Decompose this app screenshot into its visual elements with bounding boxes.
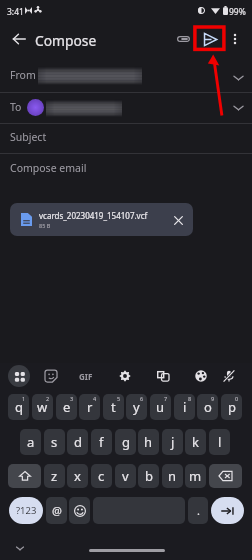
button[interactable]: m	[185, 464, 206, 488]
staticText: b	[145, 467, 153, 485]
button[interactable]: To	[0, 94, 252, 118]
staticText: 5	[117, 395, 121, 402]
button[interactable]: Expand	[232, 71, 245, 84]
button[interactable]: Apps	[8, 365, 30, 387]
button[interactable]: Settings	[114, 365, 136, 387]
button[interactable]: Expand	[232, 101, 245, 114]
staticText: k	[192, 433, 199, 451]
button[interactable]: e	[56, 394, 77, 420]
button[interactable]: .	[188, 497, 208, 524]
button[interactable]: Delete	[209, 464, 242, 488]
button[interactable]: t	[103, 394, 124, 420]
button[interactable]: Hide keyboard	[11, 539, 29, 557]
staticText: Subject	[10, 130, 47, 144]
staticText: 2	[46, 395, 50, 402]
button[interactable]: Remove attachment	[168, 210, 188, 230]
staticText: ?123	[16, 504, 37, 517]
staticText: 3:41	[7, 6, 24, 18]
staticText: q	[15, 398, 23, 416]
staticText: z	[51, 467, 58, 485]
staticText: 85 B	[39, 222, 51, 229]
button[interactable]: More options	[222, 26, 248, 52]
button[interactable]: q	[8, 394, 29, 420]
button[interactable]: x	[67, 464, 88, 488]
staticText: t	[111, 398, 116, 416]
button[interactable]: s	[44, 429, 65, 455]
button[interactable]: w	[32, 394, 53, 420]
button[interactable]: p	[221, 394, 242, 420]
button[interactable]: Shift	[8, 464, 41, 488]
staticText: 99%	[229, 6, 246, 18]
staticText: To	[10, 100, 22, 114]
staticText: 3	[70, 395, 74, 402]
button[interactable]: Compose email	[0, 155, 252, 179]
button[interactable]: f	[91, 429, 112, 455]
staticText: From	[10, 68, 36, 82]
button[interactable]: From	[0, 62, 252, 86]
staticText: 1	[22, 395, 26, 402]
staticText: g	[122, 433, 130, 451]
staticText: i	[183, 398, 187, 416]
staticText: d	[74, 433, 82, 451]
staticText: .	[197, 503, 200, 518]
staticText: r	[87, 398, 93, 416]
button[interactable]: u	[150, 394, 171, 420]
staticText: GIF	[79, 371, 93, 382]
staticText: h	[144, 433, 153, 451]
button[interactable]: n	[162, 464, 183, 488]
staticText: x	[74, 467, 81, 485]
staticText: l	[218, 433, 222, 451]
button[interactable]: @	[46, 497, 67, 524]
button[interactable]: o	[197, 394, 218, 420]
staticText: 9	[211, 395, 215, 402]
button[interactable]: Navigate up	[6, 26, 32, 52]
staticText: 4	[93, 395, 97, 402]
button[interactable]: b	[138, 464, 159, 488]
staticText: w	[37, 398, 48, 416]
button[interactable]: Send	[197, 26, 223, 52]
button[interactable]: d	[67, 429, 88, 455]
button[interactable]: g	[115, 429, 136, 455]
staticText: o	[204, 398, 212, 416]
button[interactable]: j	[162, 429, 183, 455]
button[interactable]: Next field	[211, 497, 244, 524]
staticText: 7	[164, 395, 168, 402]
staticText: f	[99, 433, 104, 451]
staticText: m	[189, 467, 202, 485]
staticText: vcards_20230419_154107.vcf	[39, 210, 148, 221]
staticText: j	[171, 433, 175, 451]
button[interactable]: y	[126, 394, 147, 420]
button[interactable]: ?123	[9, 497, 43, 524]
button[interactable]: Theme	[190, 365, 212, 387]
staticText: Compose	[35, 31, 97, 50]
staticText: a	[27, 433, 35, 451]
button[interactable]: GIF	[75, 366, 97, 386]
button[interactable]: Stickers	[40, 365, 62, 387]
button[interactable]: i	[174, 394, 195, 420]
button[interactable]: Subject	[0, 124, 252, 148]
staticText: c	[98, 467, 105, 485]
staticText: 8	[188, 395, 192, 402]
staticText: Compose email	[10, 161, 87, 175]
staticText: 6	[140, 395, 144, 402]
staticText: s	[51, 433, 58, 451]
staticText: u	[156, 398, 165, 416]
staticText: p	[228, 398, 236, 416]
button[interactable]: v	[115, 464, 136, 488]
button[interactable]: Voice typing off	[218, 365, 240, 387]
staticText: 0	[235, 395, 239, 402]
button[interactable]: z	[44, 464, 65, 488]
button[interactable]: l	[209, 429, 230, 455]
button[interactable]: Translate	[152, 365, 174, 387]
button[interactable]: h	[138, 429, 159, 455]
button[interactable]: Emoji	[69, 497, 90, 524]
button[interactable]: a	[20, 429, 41, 455]
staticText: v	[122, 467, 129, 485]
button[interactable]: vcards_20230419_154107.vcf	[10, 203, 193, 236]
button[interactable]: r	[79, 394, 100, 420]
button[interactable]: k	[185, 429, 206, 455]
button[interactable]: c	[91, 464, 112, 488]
staticText: @	[52, 503, 62, 518]
button[interactable]: Attach file	[170, 26, 196, 52]
